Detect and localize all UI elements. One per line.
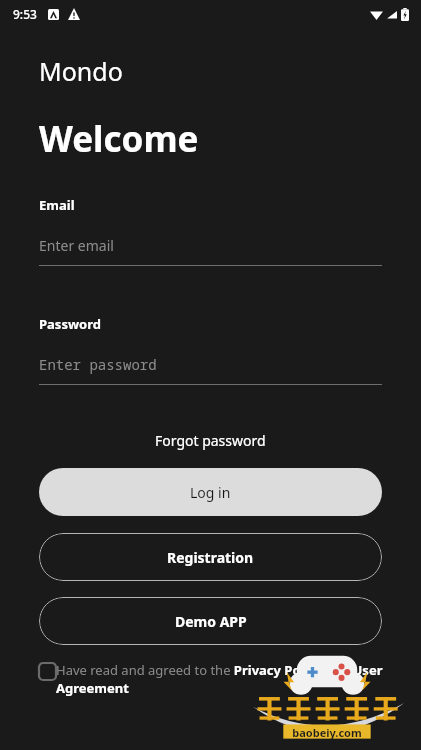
button[interactable]: Agree to terms checkbox [39,661,388,697]
staticText: baobeiy.com [292,725,362,740]
staticText: Password [39,315,101,333]
staticText: Enter email [39,236,114,255]
button[interactable]: Enter password [39,355,382,385]
staticText: Enter password [39,355,157,374]
staticText: Email [39,196,75,214]
button[interactable]: Enter email [39,236,382,266]
button[interactable]: Log in [39,468,382,516]
staticText: 9:53 [13,6,37,22]
staticText: Mondo [39,54,123,88]
button[interactable]: Demo APP [39,597,382,645]
staticText: Have read and agreed to the Privacy Poli… [56,661,388,697]
button[interactable]: Registration [39,533,382,581]
button[interactable]: Forgot password [0,431,421,450]
staticText: Log in [190,483,231,502]
staticText: Demo APP [175,612,247,631]
staticText: Welcome [39,115,199,163]
other: Agree to terms checkbox [39,663,56,680]
staticText: Registration [167,548,254,567]
staticText: Forgot password [155,431,266,450]
